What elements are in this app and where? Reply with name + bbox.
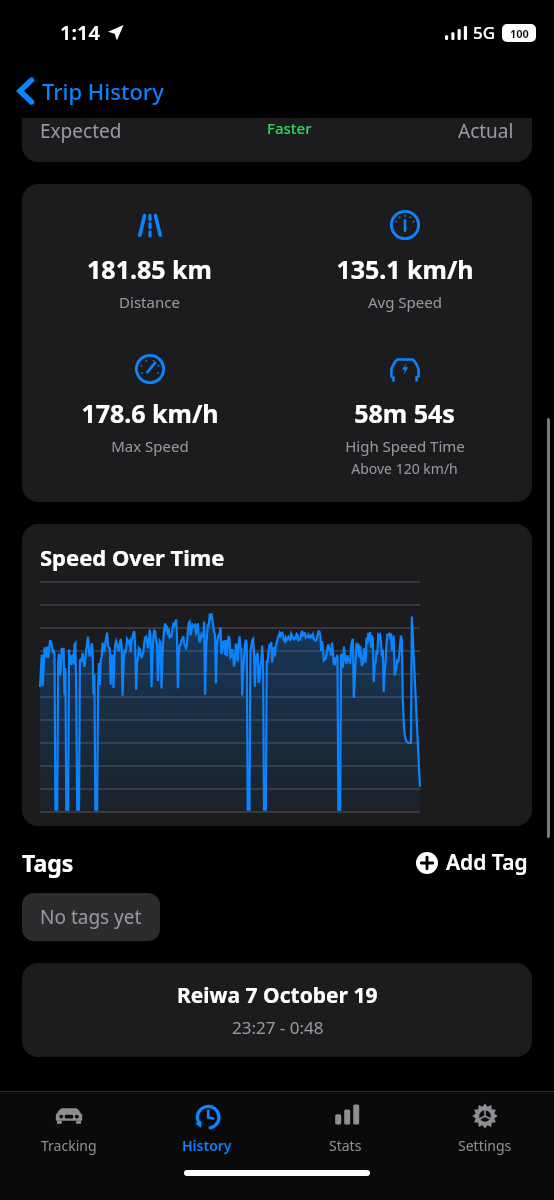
staticText: Distance: [119, 292, 180, 312]
staticText: Reiwa 7 October 19: [177, 981, 378, 1010]
button[interactable]: History: [138, 1092, 276, 1164]
staticText: Expected: [40, 118, 122, 144]
staticText: Settings: [458, 1136, 512, 1155]
button[interactable]: Trip History: [14, 72, 168, 110]
staticText: Speed Over Time: [40, 542, 225, 572]
button[interactable]: 181.85 km: [22, 208, 277, 312]
staticText: Faster: [267, 118, 312, 138]
button[interactable]: 178.6 km/h: [22, 352, 277, 456]
staticText: Add Tag: [446, 848, 528, 877]
button[interactable]: Stats: [276, 1092, 415, 1164]
button[interactable]: Settings: [415, 1092, 554, 1164]
staticText: History: [182, 1136, 232, 1155]
button[interactable]: 58m 54s: [277, 352, 532, 478]
staticText: 1:14: [60, 19, 100, 46]
staticText: Above 120 km/h: [351, 459, 458, 478]
staticText: 100: [510, 26, 529, 41]
staticText: Tracking: [41, 1136, 97, 1155]
button[interactable]: Tracking: [0, 1092, 138, 1164]
staticText: 135.1 km/h: [336, 252, 474, 286]
staticText: Stats: [329, 1136, 362, 1155]
staticText: 178.6 km/h: [81, 396, 219, 430]
staticText: Avg Speed: [368, 292, 442, 312]
staticText: 5G: [473, 21, 496, 44]
button[interactable]: 135.1 km/h: [277, 208, 532, 312]
staticText: 23:27 - 0:48: [232, 1016, 324, 1039]
staticText: Actual: [458, 118, 514, 144]
staticText: Tags: [22, 847, 74, 878]
staticText: 58m 54s: [354, 396, 455, 430]
staticText: Trip History: [42, 76, 164, 106]
staticText: High Speed Time: [345, 436, 465, 456]
button[interactable]: Add Tag: [412, 844, 532, 881]
button[interactable]: No tags yet: [22, 893, 160, 941]
staticText: No tags yet: [40, 904, 142, 930]
button[interactable]: Expected: [22, 118, 532, 162]
staticText: Max Speed: [111, 436, 189, 456]
staticText: 181.85 km: [87, 252, 212, 286]
button[interactable]: Reiwa 7 October 19: [22, 963, 532, 1057]
